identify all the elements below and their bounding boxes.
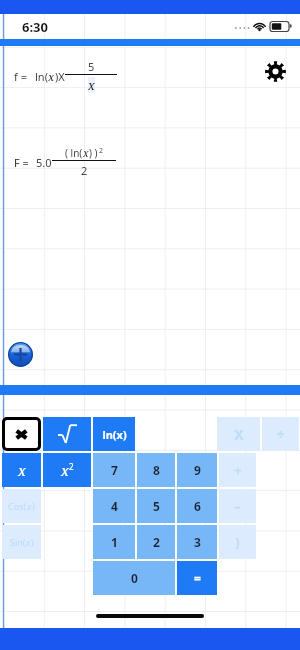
- button[interactable]: ln(x): [93, 417, 135, 451]
- staticText: )X: [55, 69, 65, 84]
- staticText: –: [234, 497, 241, 515]
- button[interactable]: 1: [93, 525, 135, 559]
- staticText: 2: [69, 461, 74, 472]
- staticText: ( ln(: [65, 146, 83, 160]
- button[interactable]: 3: [177, 525, 217, 559]
- staticText: 6:30: [22, 18, 48, 36]
- button[interactable]: Settings: [262, 58, 288, 84]
- button[interactable]: 6: [177, 489, 217, 523]
- staticText: 2: [99, 146, 104, 156]
- button[interactable]: ): [219, 525, 256, 559]
- staticText: x: [48, 69, 55, 84]
- staticText: ln(: [35, 69, 48, 84]
- staticText: x: [88, 77, 95, 93]
- button[interactable]: Cosine: [2, 489, 41, 523]
- button[interactable]: x squared: [43, 453, 91, 487]
- staticText: ) ): [89, 146, 98, 160]
- button[interactable]: F =: [14, 146, 116, 178]
- staticText: Cos(: [8, 500, 27, 512]
- button[interactable]: Sine: [2, 525, 41, 559]
- staticText: X: [234, 425, 244, 444]
- button[interactable]: Variable x: [2, 453, 41, 487]
- button[interactable]: 0: [93, 561, 175, 595]
- staticText: f =: [14, 69, 27, 84]
- staticText: 2: [153, 534, 160, 550]
- staticText: 2: [81, 163, 88, 178]
- button[interactable]: 8: [137, 453, 175, 487]
- staticText: 3: [194, 534, 201, 550]
- button[interactable]: =: [177, 561, 217, 595]
- button[interactable]: 7: [93, 453, 135, 487]
- button[interactable]: +: [219, 453, 256, 487]
- staticText: ln(x): [102, 427, 127, 442]
- button[interactable]: ÷: [262, 417, 299, 451]
- staticText: ): [32, 500, 35, 512]
- staticText: 8: [153, 462, 160, 478]
- staticText: ): [235, 533, 240, 551]
- staticText: 4: [111, 498, 118, 514]
- staticText: x: [26, 536, 31, 548]
- button[interactable]: Close keypad: [5, 420, 38, 448]
- staticText: 5.0: [36, 155, 52, 170]
- staticText: F =: [14, 155, 29, 170]
- staticText: x: [27, 500, 32, 512]
- button[interactable]: f =: [14, 59, 117, 93]
- staticText: 5: [153, 498, 160, 514]
- staticText: ): [31, 536, 34, 548]
- button[interactable]: 4: [93, 489, 135, 523]
- button[interactable]: 5: [137, 489, 175, 523]
- staticText: 5: [88, 59, 95, 74]
- staticText: x: [61, 461, 69, 480]
- button[interactable]: Square root: [43, 417, 91, 451]
- staticText: 6: [194, 498, 201, 514]
- button[interactable]: X: [217, 417, 260, 451]
- staticText: x: [83, 146, 89, 160]
- button[interactable]: Add equation: [8, 342, 33, 367]
- staticText: =: [194, 570, 201, 586]
- button[interactable]: 9: [177, 453, 217, 487]
- staticText: x: [18, 461, 26, 480]
- staticText: 9: [194, 462, 201, 478]
- staticText: Sin(: [10, 536, 26, 548]
- staticText: 1: [111, 534, 118, 550]
- staticText: +: [234, 461, 242, 479]
- staticText: 0: [131, 570, 138, 586]
- button[interactable]: 2: [137, 525, 175, 559]
- staticText: 7: [111, 462, 118, 478]
- staticText: ÷: [276, 425, 285, 444]
